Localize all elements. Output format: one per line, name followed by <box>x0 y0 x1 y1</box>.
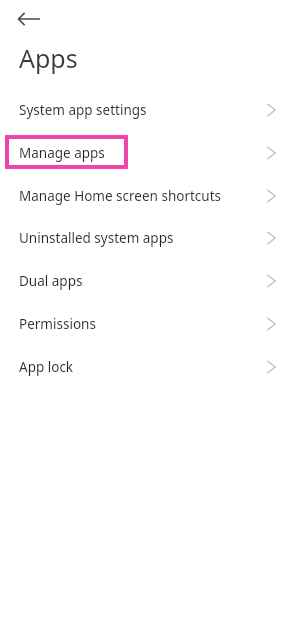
staticText: System app settings <box>19 101 147 119</box>
button[interactable]: App lock <box>0 346 295 388</box>
button[interactable]: Dual apps <box>0 260 295 302</box>
button[interactable]: Permissions <box>0 303 295 345</box>
button[interactable]: Uninstalled system apps <box>0 217 295 259</box>
button[interactable]: Manage apps <box>0 132 295 174</box>
staticText: Uninstalled system apps <box>19 229 174 247</box>
button[interactable]: System app settings <box>0 89 295 131</box>
button[interactable]: Manage Home screen shortcuts <box>0 175 295 217</box>
staticText: App lock <box>19 358 74 376</box>
staticText: Manage Home screen shortcuts <box>19 187 222 205</box>
button[interactable]: Back <box>8 4 50 34</box>
staticText: Dual apps <box>19 272 83 290</box>
staticText: Permissions <box>19 315 96 333</box>
staticText: Apps <box>19 41 78 75</box>
staticText: Manage apps <box>19 144 105 162</box>
